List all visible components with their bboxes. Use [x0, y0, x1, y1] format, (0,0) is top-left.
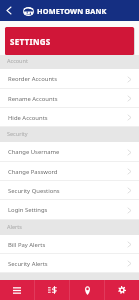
button[interactable]: Change Password — [0, 162, 139, 181]
staticText: Bill Pay Alerts — [8, 241, 46, 249]
button[interactable]: Change Username — [0, 142, 139, 162]
staticText: Security — [7, 130, 28, 137]
button[interactable]: Locations — [70, 280, 104, 300]
staticText: Alerts — [7, 223, 22, 230]
staticText: HOMETOWN BANK — [37, 6, 107, 16]
staticText: Change Username — [8, 148, 60, 156]
button[interactable]: Security Alerts — [0, 254, 139, 273]
button[interactable]: Settings — [105, 280, 139, 300]
staticText: Hide Accounts — [8, 114, 48, 122]
button[interactable]: Back — [0, 0, 18, 21]
staticText: SETTINGS — [10, 36, 51, 47]
staticText: Change Password — [8, 168, 58, 176]
button[interactable]: Transfers — [35, 280, 69, 300]
button[interactable]: Menu — [0, 280, 34, 300]
button[interactable]: Login Settings — [0, 200, 139, 220]
staticText: Login Settings — [8, 206, 48, 214]
button[interactable]: Hide Accounts — [0, 108, 139, 127]
staticText: Reorder Accounts — [8, 75, 57, 83]
button[interactable]: Bill Pay Alerts — [0, 235, 139, 254]
staticText: Security Alerts — [8, 260, 48, 268]
button[interactable]: Security Questions — [0, 181, 139, 200]
button[interactable]: Rename Accounts — [0, 89, 139, 108]
button[interactable]: Reorder Accounts — [0, 69, 139, 89]
staticText: Rename Accounts — [8, 95, 58, 103]
staticText: Account — [7, 57, 28, 64]
staticText: Security Questions — [8, 187, 60, 195]
